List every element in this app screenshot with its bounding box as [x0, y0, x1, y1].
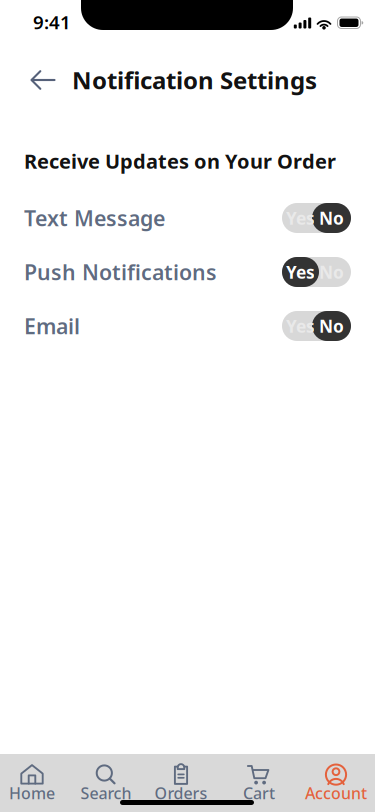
- staticText: No: [319, 206, 344, 229]
- staticText: Account: [305, 782, 367, 804]
- staticText: Yes: [286, 206, 315, 229]
- staticText: Home: [9, 782, 55, 804]
- button[interactable]: No: [282, 311, 351, 341]
- staticText: Push Notifications: [24, 258, 217, 286]
- staticText: Email: [24, 312, 80, 340]
- staticText: No: [319, 260, 344, 283]
- staticText: Text Message: [24, 204, 165, 232]
- staticText: No: [319, 314, 344, 337]
- staticText: Orders: [154, 782, 207, 804]
- button[interactable]: Yes: [282, 257, 351, 287]
- staticText: Notification Settings: [72, 64, 317, 96]
- button[interactable]: Account: [301, 754, 371, 802]
- button[interactable]: Home: [0, 754, 67, 802]
- button[interactable]: Orders: [146, 754, 216, 802]
- staticText: Receive Updates on Your Order: [24, 148, 336, 174]
- button[interactable]: No: [282, 203, 351, 233]
- staticText: Search: [80, 782, 131, 804]
- button[interactable]: Cart: [224, 754, 294, 802]
- button[interactable]: Search: [71, 754, 141, 802]
- staticText: Cart: [243, 782, 275, 804]
- button[interactable]: Back: [30, 63, 72, 97]
- staticText: Yes: [286, 314, 315, 337]
- staticText: 9:41: [33, 10, 71, 34]
- staticText: Yes: [286, 260, 315, 283]
